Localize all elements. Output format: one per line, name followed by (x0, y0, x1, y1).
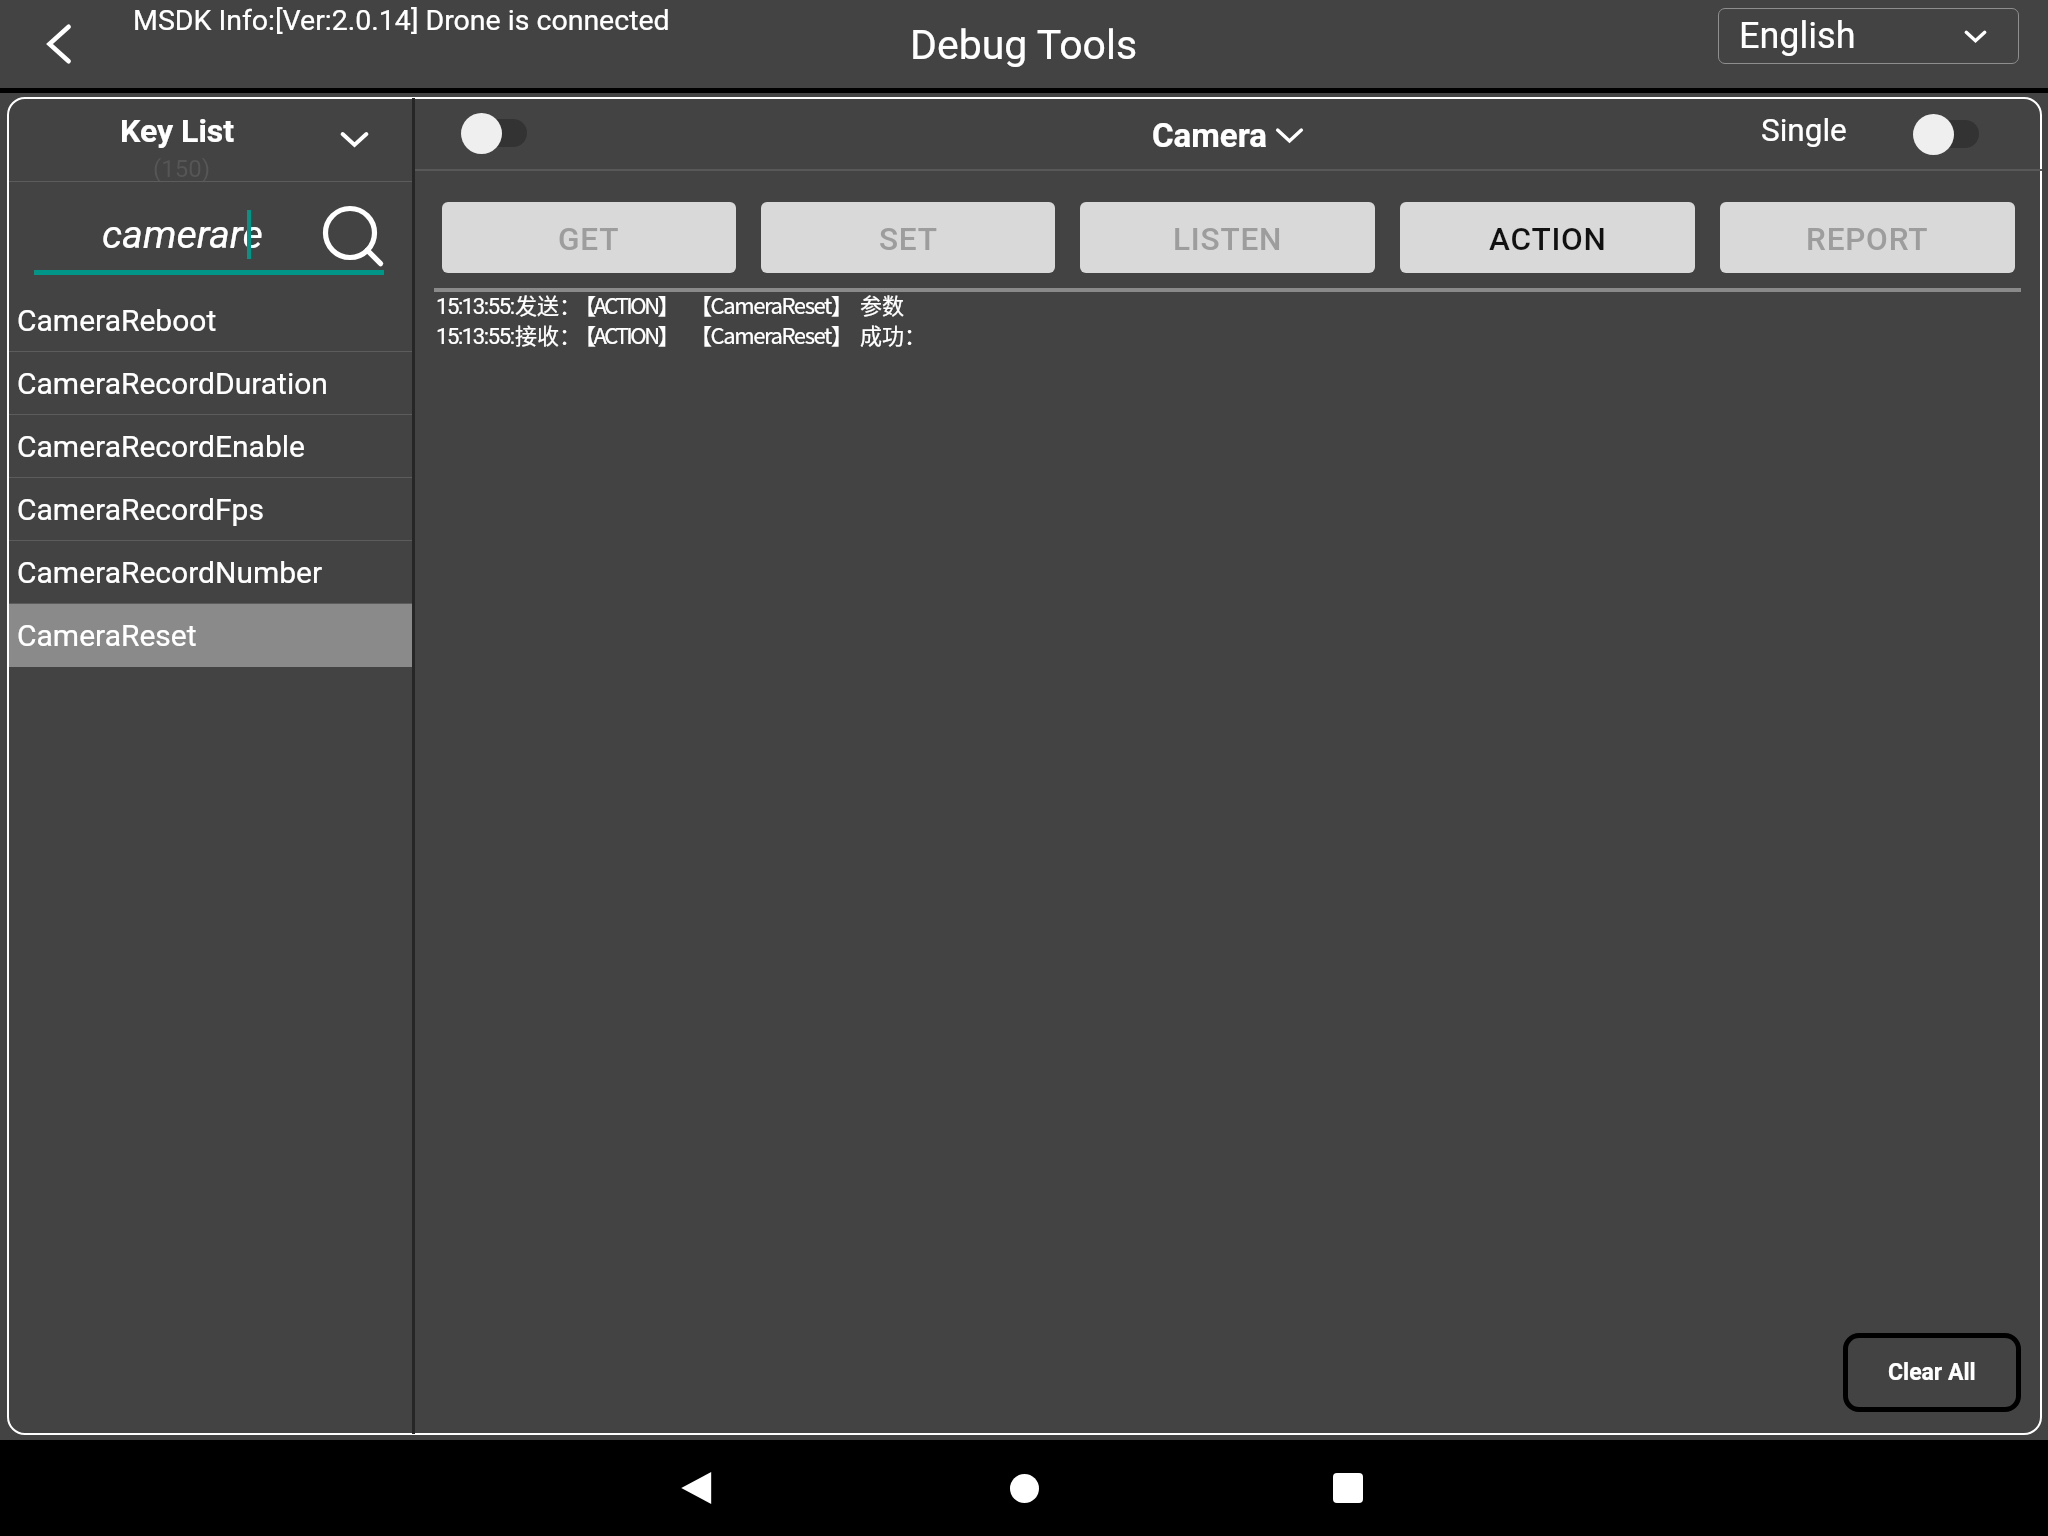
button[interactable]: CameraRecordNumber (9, 541, 412, 604)
button[interactable]: Search (305, 195, 395, 285)
staticText: ACTION (1489, 221, 1607, 258)
staticText: CameraRecordFps (17, 492, 264, 527)
button[interactable]: Single Test (1761, 112, 1979, 156)
staticText: (150) (153, 155, 211, 183)
staticText: REPORT (1806, 221, 1929, 258)
button[interactable]: CameraRecordEnable (9, 415, 412, 478)
staticText: CameraRecordNumber (17, 555, 323, 590)
button[interactable]: SET (761, 202, 1055, 273)
staticText: CameraRecordDuration (17, 366, 328, 401)
staticText: Debug Tools (910, 21, 1138, 69)
staticText: 【CameraReset】 (690, 318, 852, 350)
staticText: SET (879, 221, 938, 258)
button[interactable]: Home (929, 1440, 1119, 1536)
staticText: 15:13:55: (436, 294, 514, 320)
staticText: LISTEN (1173, 221, 1283, 258)
button[interactable]: Expand key list (332, 117, 376, 161)
button[interactable]: CameraRecordDuration (9, 352, 412, 415)
staticText: GET (558, 221, 620, 258)
button[interactable]: Back (603, 1440, 793, 1536)
button[interactable]: Recent apps (1253, 1440, 1443, 1536)
button[interactable]: REPORT (1720, 202, 2015, 273)
button[interactable]: Toggle all (461, 112, 527, 154)
staticText: 发送： (515, 288, 582, 320)
staticText: 接收： (515, 318, 582, 350)
staticText: 15:13:55: (436, 324, 514, 350)
staticText: 【CameraReset】 (690, 288, 852, 320)
staticText: 参数 (860, 288, 905, 320)
staticText: CameraReset (17, 618, 197, 653)
staticText: camerare (102, 211, 263, 257)
button[interactable]: ACTION (1400, 202, 1695, 273)
staticText: CameraReboot (17, 303, 217, 338)
staticText: English (1739, 15, 1965, 57)
staticText: CameraRecordEnable (17, 429, 305, 464)
button[interactable]: LISTEN (1080, 202, 1375, 273)
staticText: Single Test (1761, 112, 1913, 156)
button[interactable]: CameraReboot (9, 289, 412, 352)
button[interactable]: CameraRecordFps (9, 478, 412, 541)
button[interactable]: CameraReset (9, 604, 412, 667)
staticText: Key List (120, 112, 235, 150)
staticText: 成功： (860, 318, 927, 350)
button[interactable]: Clear All (1843, 1333, 2021, 1412)
staticText: 【ACTION】 (574, 288, 678, 320)
button[interactable]: Back (32, 16, 88, 72)
button[interactable]: English (1718, 8, 2019, 64)
button[interactable]: GET (442, 202, 736, 273)
button[interactable]: Camera (1152, 116, 1303, 155)
staticText: 【ACTION】 (574, 318, 678, 350)
staticText: Clear All (1888, 1359, 1976, 1386)
staticText: Camera (1152, 116, 1267, 155)
staticText: MSDK Info:[Ver:2.0.14] Drone is connecte… (133, 4, 670, 37)
